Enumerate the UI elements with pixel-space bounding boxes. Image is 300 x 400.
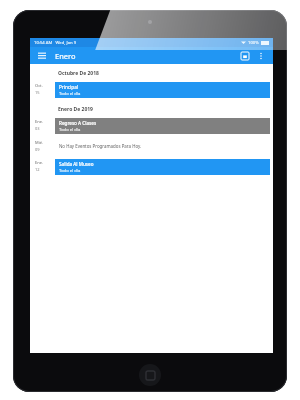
staticText: 12: [35, 167, 40, 172]
staticText: Todo el día: [59, 91, 81, 97]
button[interactable]: Ene.: [33, 118, 270, 134]
staticText: Regreso A Clases: [59, 120, 97, 126]
staticText: Octubre De 2018: [58, 70, 99, 77]
staticText: Ene.: [35, 160, 44, 165]
staticText: 100%: [248, 40, 259, 46]
staticText: 09: [35, 147, 40, 152]
staticText: Enero: [55, 51, 76, 61]
staticText: Todo el día: [59, 127, 81, 133]
button[interactable]: Mié.: [33, 139, 270, 153]
button[interactable]: Home: [139, 364, 161, 386]
button[interactable]: Go to today: [239, 50, 251, 62]
staticText: 03: [35, 126, 40, 131]
staticText: Oct.: [35, 83, 43, 88]
staticText: Enero De 2019: [58, 106, 93, 113]
button[interactable]: More options: [255, 50, 267, 62]
staticText: 10:54 AM Wed, Jan 9: [34, 40, 77, 46]
staticText: Todo el día: [59, 168, 81, 174]
staticText: 15: [35, 90, 40, 95]
staticText: Mié.: [35, 140, 44, 145]
button[interactable]: Open navigation menu: [36, 50, 48, 62]
staticText: Principal: [59, 84, 79, 90]
staticText: Salida Al Museo: [59, 161, 94, 167]
button[interactable]: Oct.: [33, 82, 270, 98]
staticText: No Hay Eventos Programados Para Hoy.: [59, 143, 142, 149]
button[interactable]: Ene.: [33, 159, 270, 175]
staticText: Ene.: [35, 119, 44, 124]
